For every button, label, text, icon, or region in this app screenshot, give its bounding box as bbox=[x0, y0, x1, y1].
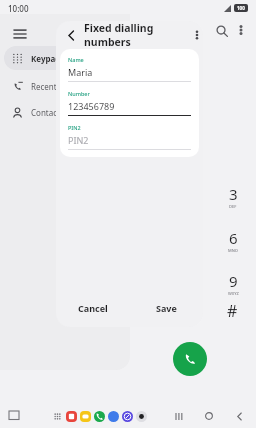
staticText: Name bbox=[68, 56, 84, 63]
staticText: 10:00 bbox=[8, 3, 29, 14]
staticText: PIN2 bbox=[68, 134, 89, 146]
staticText: PIN2 bbox=[68, 124, 81, 131]
staticText: 6 bbox=[229, 228, 238, 248]
button[interactable]: Home bbox=[202, 409, 216, 423]
staticText: WXYZ bbox=[228, 291, 239, 296]
button[interactable]: App bbox=[94, 411, 105, 422]
button[interactable]: Menu bbox=[6, 20, 34, 48]
staticText: # bbox=[227, 300, 238, 320]
button[interactable]: Keypad bbox=[4, 46, 126, 70]
button[interactable]: App bbox=[108, 411, 119, 422]
staticText: 9 bbox=[229, 271, 238, 291]
button[interactable]: 3 bbox=[222, 184, 244, 209]
staticText: 3 bbox=[229, 184, 238, 204]
button[interactable]: Screenshot bbox=[8, 410, 20, 422]
staticText: Maria bbox=[68, 66, 93, 78]
button[interactable]: 6 bbox=[222, 228, 244, 253]
button[interactable]: Back bbox=[232, 409, 246, 423]
button[interactable]: App bbox=[80, 411, 91, 422]
button[interactable]: 9 bbox=[222, 271, 244, 296]
button[interactable]: App bbox=[66, 411, 77, 422]
button[interactable]: More options bbox=[230, 19, 252, 41]
button[interactable]: Recents bbox=[172, 409, 186, 423]
staticText: Contacts bbox=[31, 107, 64, 118]
button[interactable]: Search bbox=[210, 19, 234, 43]
staticText: Fixed dialling numbers bbox=[84, 21, 197, 49]
staticText: Save bbox=[156, 302, 177, 314]
button[interactable]: App bbox=[122, 411, 133, 422]
staticText: Recents bbox=[31, 81, 61, 92]
staticText: Keypad bbox=[31, 53, 61, 64]
button[interactable]: Back bbox=[62, 26, 80, 44]
button[interactable]: Recents bbox=[4, 74, 126, 98]
button[interactable]: Contacts bbox=[4, 100, 126, 124]
button[interactable]: # bbox=[222, 300, 242, 320]
button[interactable]: Cancel bbox=[56, 293, 129, 323]
staticText: DEF bbox=[229, 204, 237, 209]
button[interactable]: Apps bbox=[52, 411, 63, 422]
staticText: MNO bbox=[228, 248, 238, 253]
staticText: Number bbox=[68, 90, 90, 97]
staticText: Cancel bbox=[78, 302, 108, 314]
staticText: 100 bbox=[237, 5, 245, 11]
button[interactable]: App bbox=[136, 411, 147, 422]
button[interactable]: Call bbox=[173, 342, 207, 376]
button[interactable]: Save bbox=[129, 293, 203, 323]
staticText: 123456789 bbox=[68, 100, 115, 112]
